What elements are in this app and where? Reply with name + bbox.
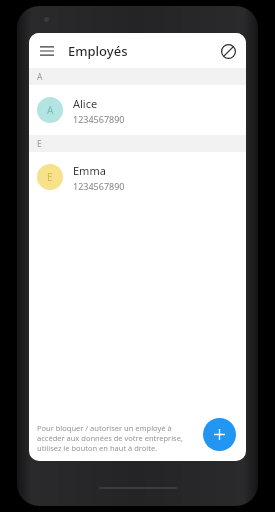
button[interactable]: Ajouter un employé — [203, 418, 236, 451]
staticText: Employés — [68, 42, 128, 60]
staticText: 1234567890 — [73, 180, 125, 192]
button[interactable]: A — [29, 85, 246, 135]
staticText: 1234567890 — [73, 113, 125, 125]
button[interactable]: Bloquer — [214, 37, 242, 65]
staticText: E — [47, 170, 53, 184]
staticText: E — [37, 138, 42, 150]
button[interactable]: E — [29, 152, 246, 202]
staticText: A — [37, 71, 43, 83]
staticText: Emma — [73, 163, 106, 178]
staticText: Pour bloquer / autoriser un employé à ac… — [37, 423, 183, 453]
staticText: Alice — [73, 96, 98, 111]
button[interactable]: Menu — [33, 37, 61, 65]
staticText: A — [47, 103, 54, 117]
